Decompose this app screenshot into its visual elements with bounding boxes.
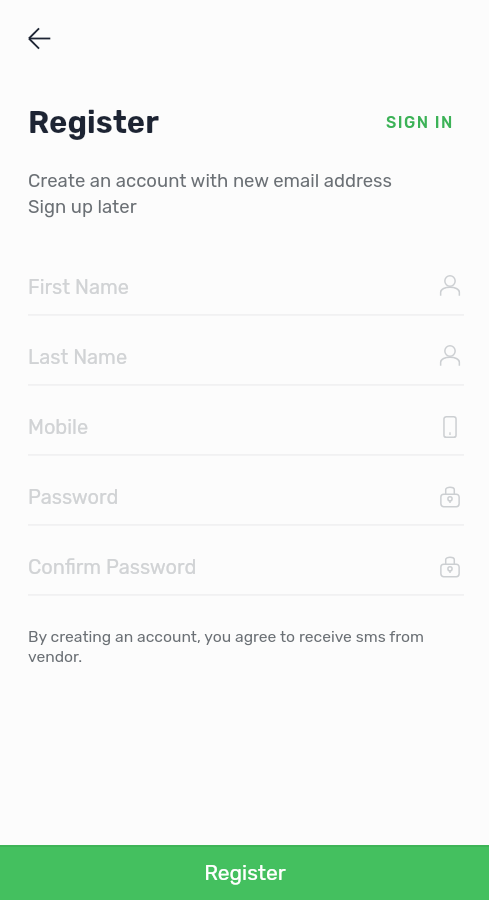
staticText: By creating an account, you agree to rec… <box>28 627 432 666</box>
staticText: Sign up later <box>28 196 137 218</box>
button[interactable]: Mobile <box>28 386 464 456</box>
staticText: SIGN IN <box>386 113 454 132</box>
staticText: Last Name <box>28 345 128 369</box>
staticText: First Name <box>28 275 129 299</box>
button[interactable]: Confirm Password <box>28 526 464 596</box>
staticText: Password <box>28 485 119 509</box>
button[interactable]: Password <box>28 456 464 526</box>
staticText: Create an account with new email address <box>28 170 392 192</box>
button[interactable]: Last Name <box>28 316 464 386</box>
button[interactable]: SIGN IN <box>386 107 454 138</box>
button[interactable]: First Name <box>28 246 464 316</box>
button[interactable]: Back <box>15 14 63 62</box>
staticText: Register <box>28 104 160 141</box>
staticText: Mobile <box>28 415 89 439</box>
staticText: Confirm Password <box>28 555 197 579</box>
staticText: Register <box>204 860 286 885</box>
button[interactable]: Register <box>0 845 489 900</box>
button[interactable]: Sign up later <box>28 196 137 218</box>
